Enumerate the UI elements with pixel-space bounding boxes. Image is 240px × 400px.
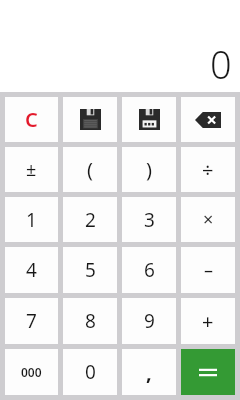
button[interactable]: Save <box>63 97 117 142</box>
staticText: – <box>204 258 213 283</box>
button[interactable]: 0 <box>63 349 117 395</box>
button[interactable]: 4 <box>5 247 58 293</box>
button[interactable]: – <box>181 247 235 293</box>
button[interactable]: 1 <box>5 197 58 242</box>
button[interactable]: C <box>5 97 58 142</box>
button[interactable]: × <box>181 197 235 242</box>
button[interactable]: 2 <box>63 197 117 242</box>
button[interactable]: 8 <box>63 298 117 344</box>
staticText: ( <box>87 156 93 183</box>
staticText: 000 <box>21 364 42 380</box>
staticText: , <box>146 359 152 386</box>
button[interactable]: 5 <box>63 247 117 293</box>
staticText: C <box>25 106 38 133</box>
staticText: 8 <box>85 308 96 334</box>
staticText: 0 <box>85 359 96 385</box>
staticText: 3 <box>144 207 155 233</box>
button[interactable]: 6 <box>122 247 176 293</box>
staticText: 1 <box>26 207 37 233</box>
button[interactable]: ) <box>122 147 176 192</box>
staticText: ÷ <box>202 156 214 183</box>
staticText: 5 <box>85 257 96 283</box>
button[interactable]: 3 <box>122 197 176 242</box>
staticText: × <box>203 207 214 232</box>
button[interactable]: Save as text <box>122 97 176 142</box>
button[interactable]: ( <box>63 147 117 192</box>
staticText: ± <box>26 157 37 182</box>
staticText: 6 <box>144 257 155 283</box>
button[interactable]: 9 <box>122 298 176 344</box>
staticText: 9 <box>144 308 155 334</box>
button[interactable]: 7 <box>5 298 58 344</box>
staticText: 4 <box>26 257 37 283</box>
staticText: ) <box>146 156 152 183</box>
button[interactable]: Backspace <box>181 97 235 142</box>
button[interactable]: ÷ <box>181 147 235 192</box>
button[interactable]: 000 <box>5 349 58 395</box>
staticText: + <box>202 308 214 335</box>
button[interactable]: + <box>181 298 235 344</box>
button[interactable]: ± <box>5 147 58 192</box>
staticText: 0 <box>210 38 232 90</box>
button[interactable]: Equals <box>181 349 235 395</box>
button[interactable]: , <box>122 349 176 395</box>
staticText: 7 <box>26 308 37 334</box>
staticText: 2 <box>85 207 96 233</box>
